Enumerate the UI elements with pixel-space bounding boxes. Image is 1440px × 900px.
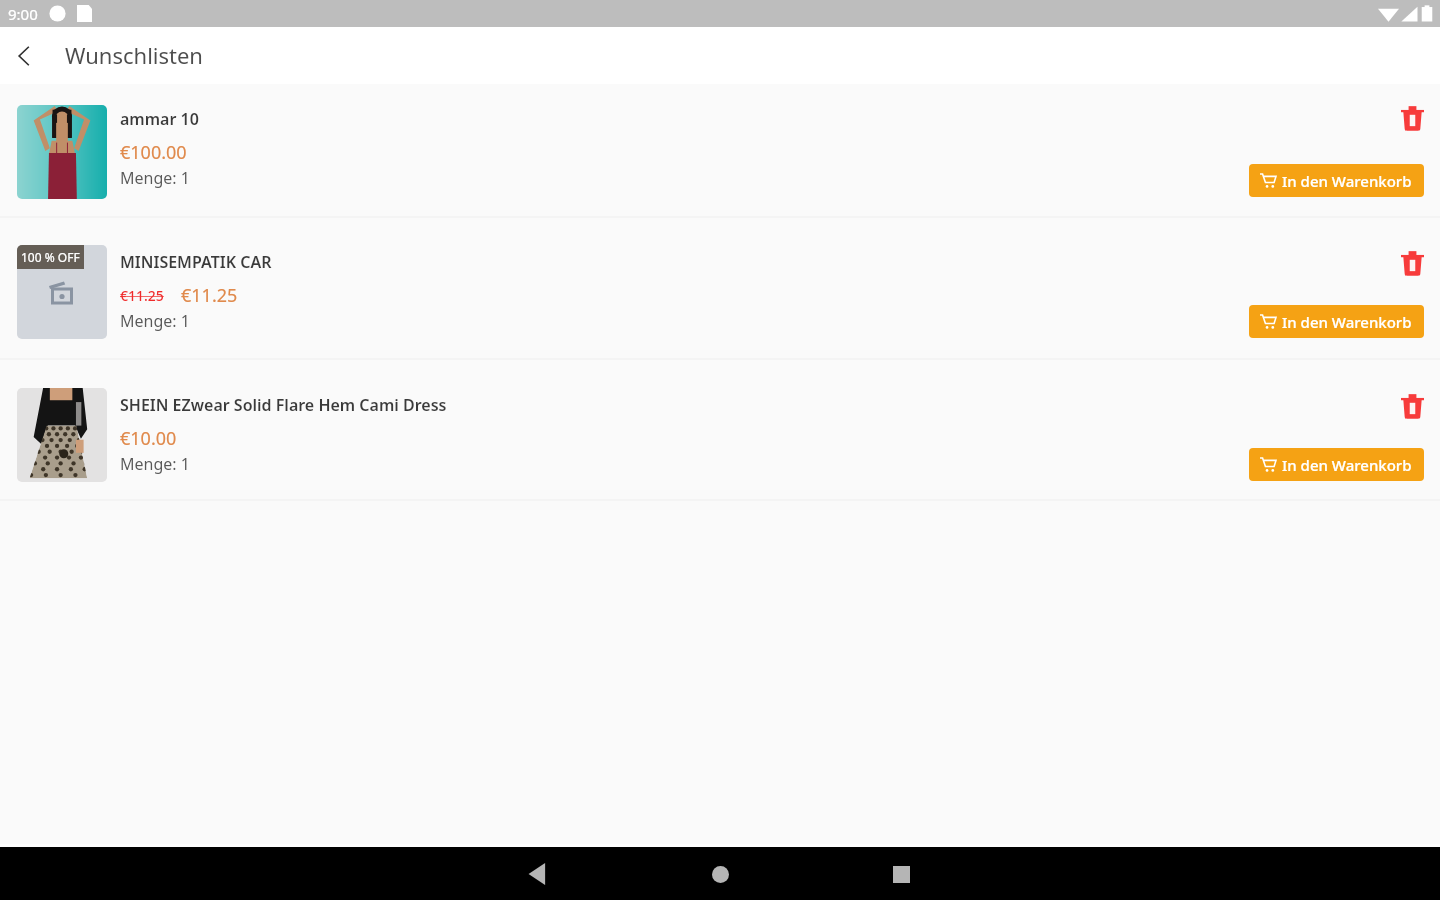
button[interactable]: SHEIN EZwear Solid Flare Hem Cami Dress xyxy=(0,360,1440,501)
button[interactable]: Delete xyxy=(1396,389,1429,421)
staticText: Wunschlisten xyxy=(65,40,203,70)
staticText: In den Warenkorb xyxy=(1282,312,1412,332)
staticText: Menge: 1 xyxy=(120,453,190,475)
staticText: 100 % OFF xyxy=(21,249,80,265)
staticText: MINISEMPATIK CAR xyxy=(120,251,272,273)
staticText: €11.25 xyxy=(120,286,164,305)
button[interactable]: Home xyxy=(696,850,744,898)
staticText: 9:00 xyxy=(8,4,38,24)
staticText: In den Warenkorb xyxy=(1282,455,1412,475)
button[interactable]: Back xyxy=(2,34,46,78)
button[interactable]: Delete xyxy=(1396,101,1429,133)
staticText: SHEIN EZwear Solid Flare Hem Cami Dress xyxy=(120,394,447,416)
staticText: Menge: 1 xyxy=(120,167,190,189)
staticText: In den Warenkorb xyxy=(1282,171,1412,191)
staticText: ammar 10 xyxy=(120,108,199,130)
staticText: €100.00 xyxy=(120,140,187,165)
button[interactable]: Recent apps xyxy=(877,850,925,898)
button[interactable]: Back xyxy=(513,850,561,898)
staticText: €10.00 xyxy=(120,426,177,451)
button[interactable]: 100 % OFF xyxy=(0,218,1440,360)
button[interactable]: ammar 10 xyxy=(0,84,1440,218)
button[interactable]: Delete xyxy=(1396,246,1429,278)
button[interactable]: In den Warenkorb xyxy=(1249,448,1424,481)
button[interactable]: In den Warenkorb xyxy=(1249,305,1424,338)
staticText: Menge: 1 xyxy=(120,310,190,332)
button[interactable]: In den Warenkorb xyxy=(1249,164,1424,197)
staticText: €11.25 xyxy=(181,283,238,308)
